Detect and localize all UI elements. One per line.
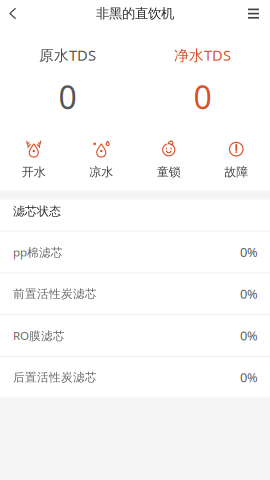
button[interactable]: RO膜滤芯	[0, 315, 270, 356]
button[interactable]: Back	[0, 0, 39, 27]
button[interactable]: 前置活性炭滤芯	[0, 273, 270, 314]
staticText: 前置活性炭滤芯	[13, 286, 97, 301]
staticText: RO膜滤芯	[13, 328, 65, 343]
staticText: 0%	[240, 243, 258, 261]
button[interactable]: 凉水	[67, 140, 135, 180]
staticText: 0%	[240, 327, 258, 344]
button[interactable]: 童锁	[135, 140, 202, 180]
staticText: pp棉滤芯	[13, 244, 63, 260]
staticText: 故障	[224, 165, 248, 180]
button[interactable]: 故障	[202, 140, 270, 180]
staticText: 原水TDS	[39, 45, 96, 65]
button[interactable]: pp棉滤芯	[0, 232, 270, 272]
staticText: 0	[58, 75, 76, 119]
staticText: 滤芯状态	[13, 204, 61, 219]
button[interactable]: 开水	[0, 140, 67, 180]
staticText: 0%	[240, 369, 258, 386]
button[interactable]: Menu	[229, 0, 270, 27]
staticText: 净水TDS	[174, 45, 231, 65]
button[interactable]: 后置活性炭滤芯	[0, 357, 270, 398]
staticText: 童锁	[157, 165, 181, 180]
staticText: 开水	[22, 165, 46, 180]
staticText: 非黑的直饮机	[96, 5, 174, 22]
staticText: 凉水	[89, 165, 113, 180]
staticText: 后置活性炭滤芯	[13, 370, 97, 385]
staticText: 0	[193, 75, 211, 119]
staticText: 0%	[240, 285, 258, 302]
